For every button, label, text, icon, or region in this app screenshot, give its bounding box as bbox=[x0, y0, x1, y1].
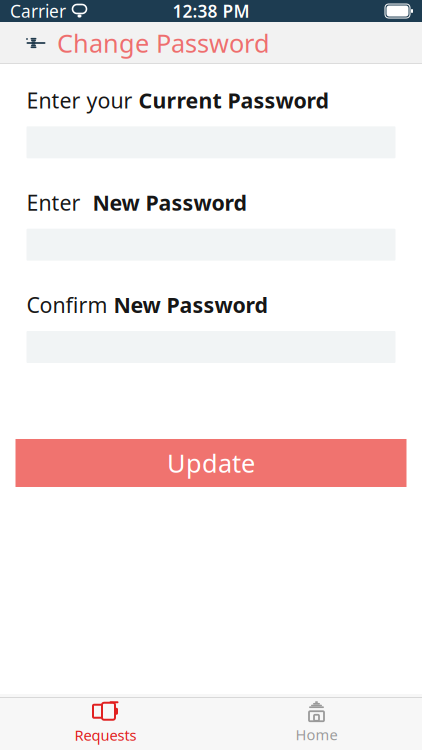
staticText: Enter bbox=[26, 188, 92, 217]
button[interactable]: Requests bbox=[0, 698, 211, 747]
staticText: Carrier bbox=[10, 0, 66, 22]
staticText: Confirm bbox=[26, 291, 113, 319]
staticText: Requests bbox=[74, 725, 136, 745]
staticText: 12:38 PM bbox=[172, 0, 249, 22]
button[interactable]: Update bbox=[15, 439, 406, 487]
staticText: New Password bbox=[92, 188, 246, 217]
staticText: Current Password bbox=[138, 86, 328, 114]
button[interactable]: Home bbox=[211, 698, 422, 747]
button[interactable]: Change Password bbox=[57, 16, 270, 70]
staticText: Update bbox=[167, 446, 255, 480]
staticText: Home bbox=[295, 725, 337, 744]
button[interactable]: Back bbox=[15, 22, 57, 64]
staticText: Enter your bbox=[26, 86, 138, 114]
staticText: Change Password bbox=[57, 26, 270, 60]
staticText: New Password bbox=[113, 291, 267, 319]
